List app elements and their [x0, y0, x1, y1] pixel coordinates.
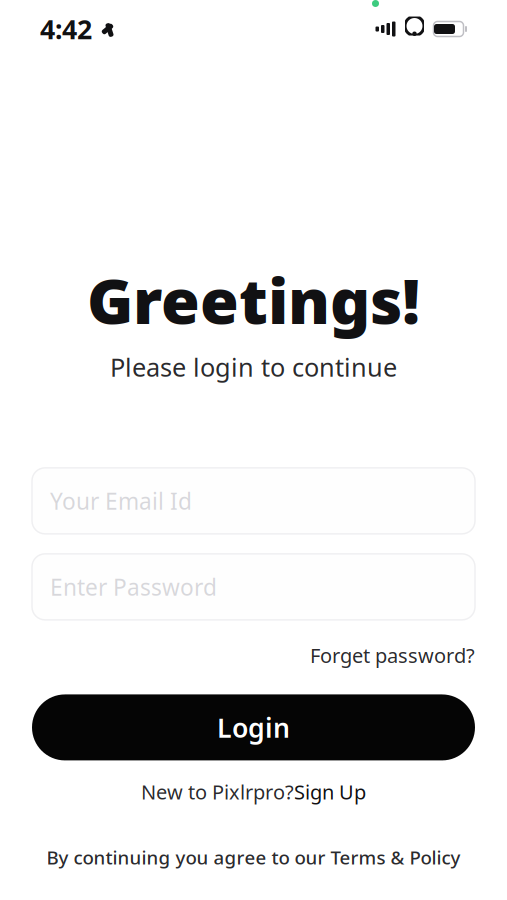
staticText: Enter Password — [50, 572, 217, 602]
staticText: New to Pixlrpro? — [141, 778, 294, 805]
button[interactable]: Enter Password — [32, 554, 475, 620]
staticText: Greetings! — [87, 258, 420, 341]
staticText: Sign Up — [294, 778, 366, 805]
button[interactable]: Forget password? — [310, 642, 475, 668]
button[interactable]: New to Pixlrpro? — [141, 778, 366, 805]
staticText: Login — [217, 710, 290, 745]
staticText: By continuing you agree to our Terms & P… — [46, 845, 460, 870]
button[interactable]: Login — [32, 694, 475, 760]
button[interactable]: Your Email Id — [32, 468, 475, 534]
staticText: Your Email Id — [50, 486, 192, 516]
button[interactable]: By continuing you agree to our Terms & P… — [46, 845, 460, 870]
staticText: Forget password? — [310, 642, 475, 668]
staticText: 4:42 — [40, 11, 92, 47]
staticText: Please login to continue — [110, 350, 397, 384]
